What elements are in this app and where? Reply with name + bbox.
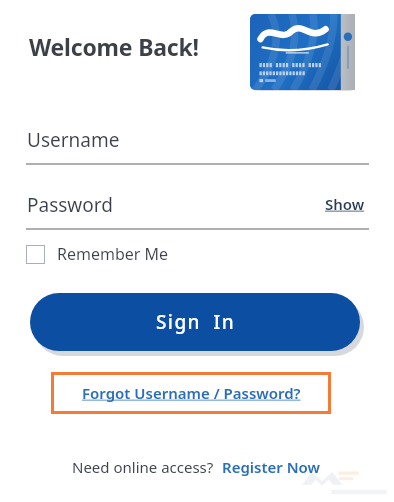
button[interactable]: Remember Me	[26, 240, 177, 268]
staticText: Need online access?	[72, 457, 214, 477]
button[interactable]: Forgot Username / Password?	[51, 372, 331, 414]
staticText: Remember Me	[57, 243, 169, 265]
staticText: Welcome Back!	[29, 31, 199, 62]
staticText: Show	[325, 194, 365, 214]
staticText: Password	[27, 192, 113, 218]
button[interactable]: Sign In	[30, 293, 360, 351]
staticText: Username	[27, 127, 120, 153]
button[interactable]: Register Now	[221, 455, 322, 479]
staticText: Register Now	[222, 457, 321, 477]
staticText: Forgot Username / Password?	[82, 383, 301, 403]
button[interactable]: Show	[323, 192, 367, 216]
staticText: Sign In	[156, 309, 235, 335]
other: Boscov's credit card	[250, 14, 355, 90]
